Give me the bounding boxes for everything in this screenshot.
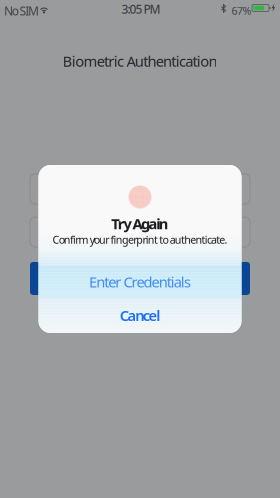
staticText: Login bbox=[122, 269, 157, 288]
button[interactable]: Enter Credentials bbox=[38, 267, 241, 297]
staticText: Biometric Authentication bbox=[63, 51, 217, 71]
staticText: 3:05 PM bbox=[121, 1, 160, 17]
staticText: No SIM bbox=[4, 3, 39, 19]
staticText: Username bbox=[38, 181, 90, 197]
button[interactable]: Cancel bbox=[38, 298, 241, 333]
staticText: Password bbox=[38, 224, 85, 240]
staticText: Cancel bbox=[120, 306, 160, 325]
staticText: 67% bbox=[231, 3, 251, 18]
staticText: Try Again bbox=[111, 214, 169, 233]
staticText: Enter Credentials bbox=[89, 272, 191, 292]
button[interactable]: Login bbox=[30, 262, 250, 295]
staticText: Confirm your fingerprint to authenticate… bbox=[52, 232, 227, 247]
